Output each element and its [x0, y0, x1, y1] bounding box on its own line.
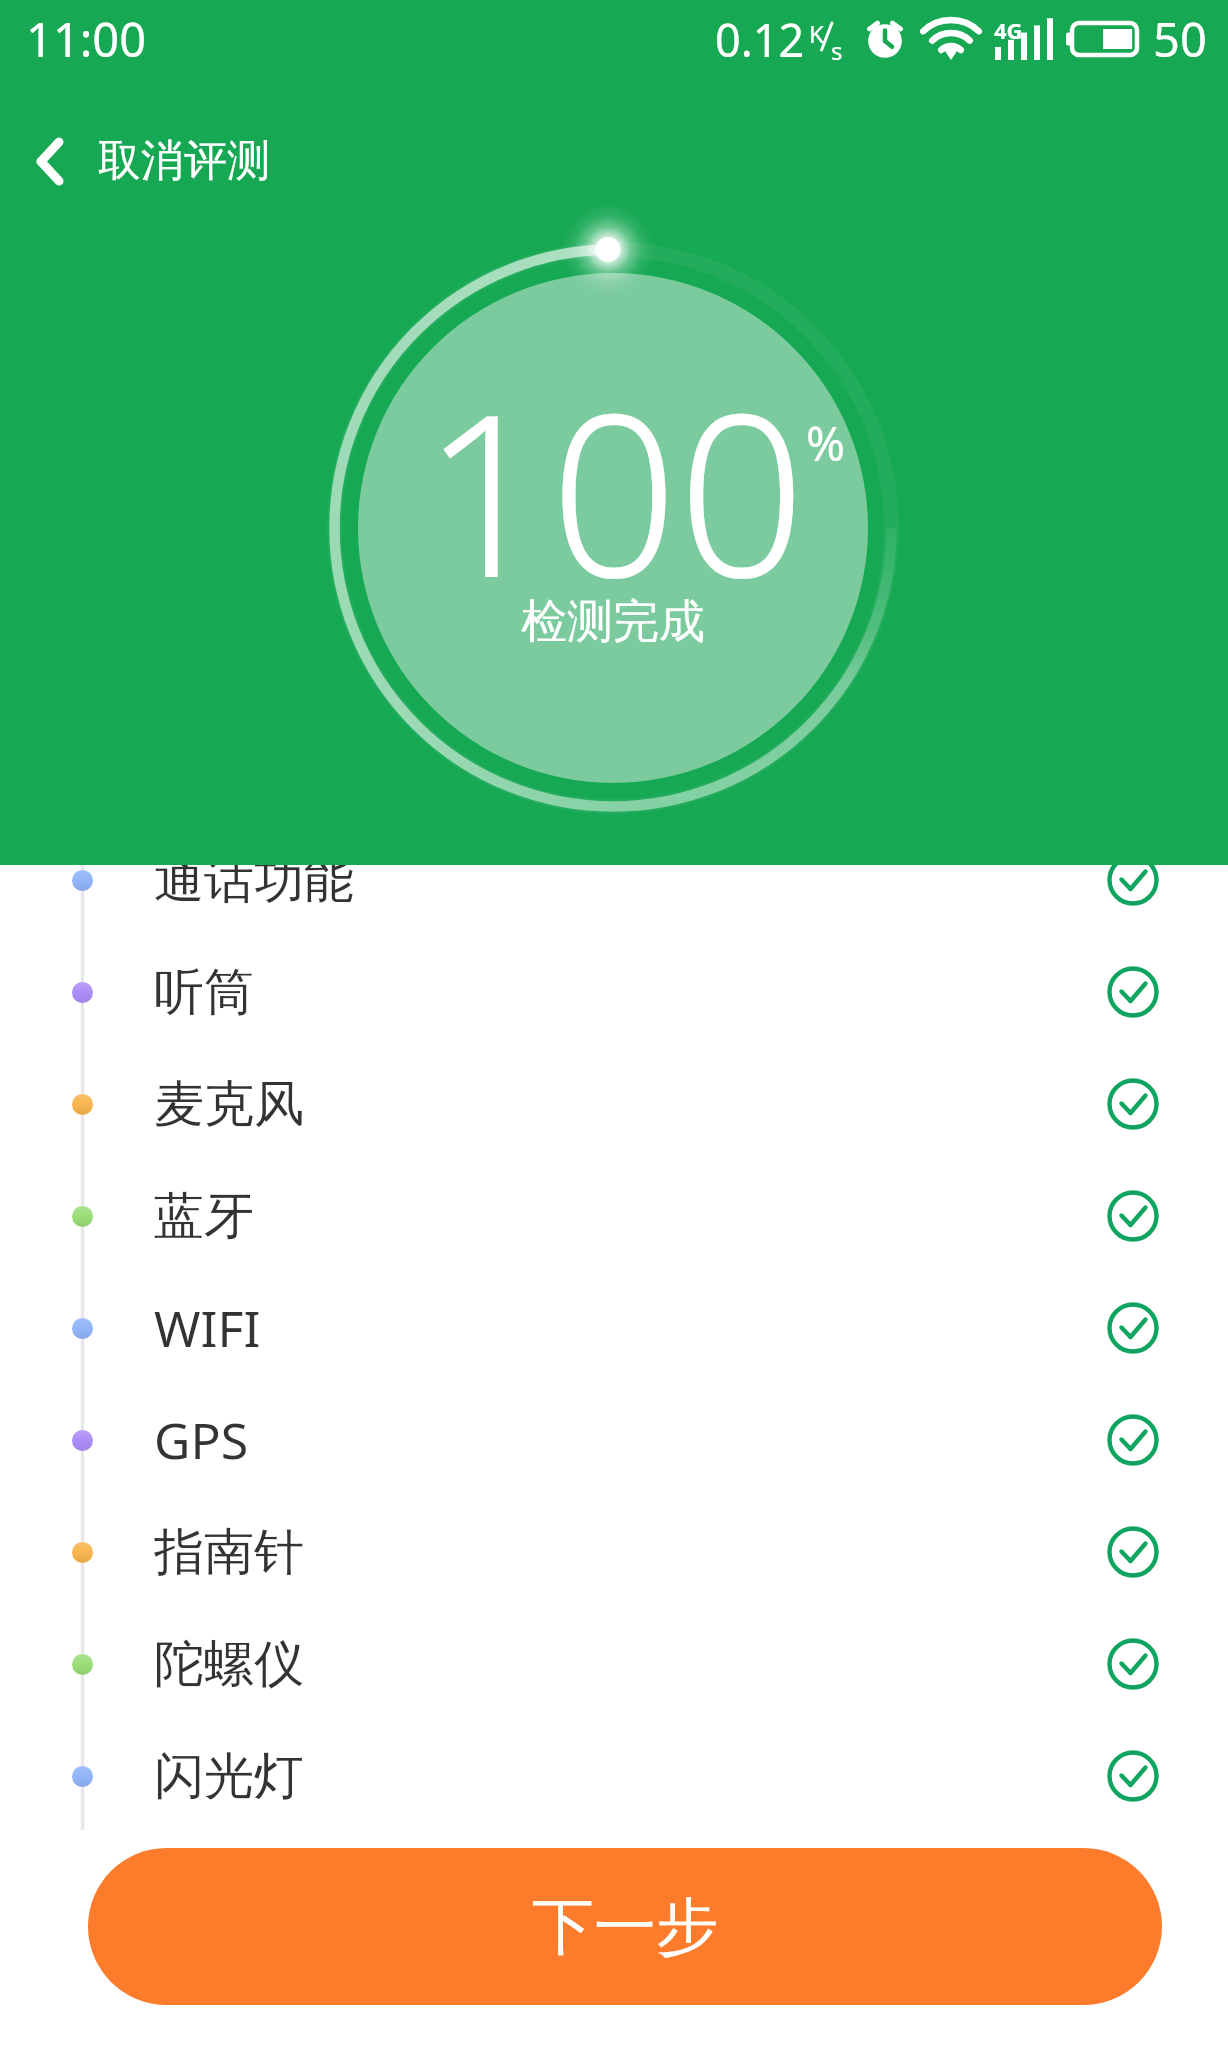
- staticText: 0.12: [715, 9, 805, 70]
- staticText: 指南针: [154, 1521, 304, 1584]
- other: Passed: [1105, 1636, 1161, 1692]
- staticText: 听筒: [154, 961, 254, 1024]
- staticText: 100: [422, 338, 806, 643]
- button[interactable]: 下一步: [88, 1848, 1162, 2005]
- staticText: 麦克风: [154, 1073, 304, 1136]
- button[interactable]: 指南针: [0, 1496, 1228, 1608]
- staticText: 闪光灯: [154, 1745, 304, 1808]
- button[interactable]: WIFI: [0, 1272, 1228, 1384]
- other: Passed: [1105, 865, 1161, 908]
- other: Passed: [1105, 1748, 1161, 1804]
- staticText: 4G: [994, 15, 1023, 45]
- staticText: 检测完成: [521, 593, 705, 651]
- button[interactable]: GPS: [0, 1384, 1228, 1496]
- staticText: WIFI: [154, 1294, 261, 1362]
- button[interactable]: 取消评测 Back: [0, 122, 288, 200]
- button[interactable]: 蓝牙: [0, 1160, 1228, 1272]
- staticText: 蓝牙: [154, 1185, 254, 1248]
- other: Passed: [1105, 1188, 1161, 1244]
- other: Passed: [1105, 1300, 1161, 1356]
- staticText: %: [806, 411, 846, 475]
- button[interactable]: 麦克风: [0, 1048, 1228, 1160]
- staticText: s: [831, 34, 843, 67]
- staticText: 下一步: [532, 1888, 718, 1966]
- staticText: 陀螺仪: [154, 1633, 304, 1696]
- other: Passed: [1105, 1412, 1161, 1468]
- staticText: GPS: [154, 1406, 249, 1474]
- other: Passed: [1105, 964, 1161, 1020]
- button[interactable]: 陀螺仪: [0, 1608, 1228, 1720]
- staticText: 11:00: [26, 7, 147, 71]
- staticText: K: [809, 17, 824, 50]
- staticText: 取消评测: [98, 134, 270, 188]
- other: Passed: [1105, 1076, 1161, 1132]
- staticText: 通话功能: [154, 865, 354, 912]
- button[interactable]: 通话功能: [0, 865, 1228, 936]
- button[interactable]: 听筒: [0, 936, 1228, 1048]
- other: Passed: [1105, 1524, 1161, 1580]
- staticText: 50: [1153, 7, 1207, 71]
- button[interactable]: 闪光灯: [0, 1720, 1228, 1832]
